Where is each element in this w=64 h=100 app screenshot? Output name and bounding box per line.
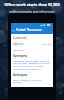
staticText: adjective <box>13 42 24 46</box>
staticText: Pocket Thesaurus <box>16 28 42 32</box>
other: Back <box>12 29 15 32</box>
staticText: Office work starts than 50,000 words <box>1 2 63 7</box>
button[interactable]: Share <box>48 43 51 46</box>
button[interactable]: Back <box>11 27 53 33</box>
staticText: with comments and references <box>1 10 63 14</box>
staticText: Synonyms <box>13 54 28 58</box>
staticText: grammar <box>13 48 25 51</box>
staticText: sideways, lateral, side, flanking, side-… <box>13 59 51 71</box>
button[interactable]: More options <box>43 43 47 46</box>
staticText: Lateral <box>13 35 27 41</box>
staticText: direct, straight, head-on, vertical <box>13 78 51 84</box>
staticText: Antonyms <box>13 73 28 77</box>
